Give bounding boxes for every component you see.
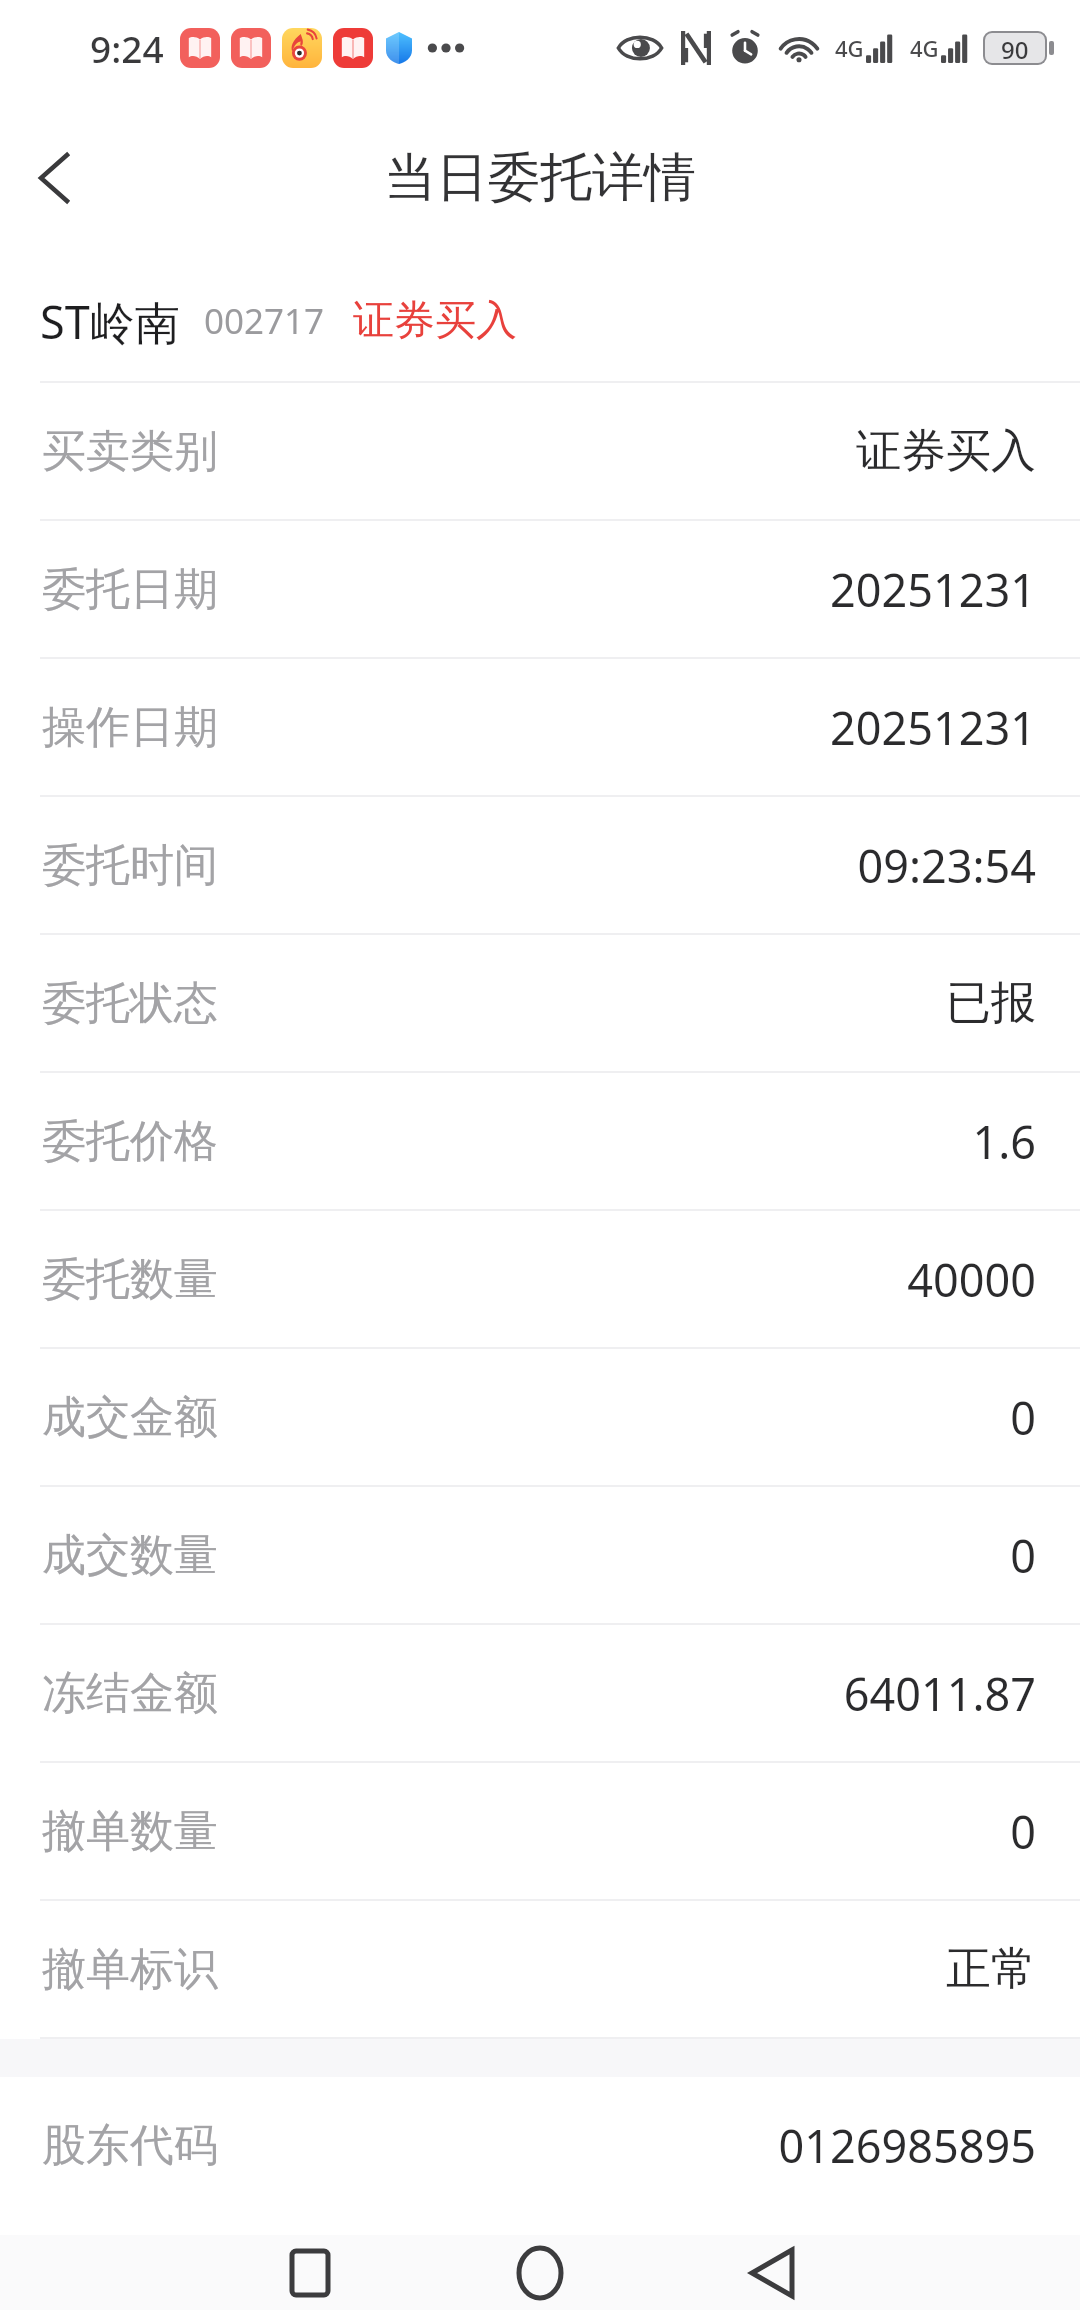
staticText: 股东代码 — [42, 2118, 218, 2173]
staticText: 买卖类别 — [42, 424, 218, 479]
staticText: 委托时间 — [42, 838, 218, 893]
button[interactable]: 委托状态 — [0, 935, 1080, 1071]
button[interactable]: 主页 — [492, 2235, 588, 2310]
staticText: 90 — [1001, 33, 1029, 63]
button[interactable]: 冻结金额 — [0, 1625, 1080, 1761]
staticText: 4G — [910, 33, 939, 63]
staticText: 撤单数量 — [42, 1804, 218, 1859]
staticText: 委托状态 — [42, 976, 218, 1031]
button[interactable]: 操作日期 — [0, 659, 1080, 795]
button[interactable]: 委托时间 — [0, 797, 1080, 933]
staticText: 正常 — [946, 1941, 1036, 1998]
staticText: 64011.87 — [843, 1663, 1036, 1724]
staticText: 0 — [1010, 1801, 1036, 1862]
staticText: 成交数量 — [42, 1528, 218, 1583]
staticText: 0 — [1010, 1525, 1036, 1586]
button[interactable]: 撤单数量 — [0, 1763, 1080, 1899]
staticText: 4G — [835, 33, 864, 63]
button[interactable]: 撤单标识 — [0, 1901, 1080, 2037]
staticText: 成交金额 — [42, 1390, 218, 1445]
staticText: 002717 — [204, 297, 325, 345]
staticText: 1.6 — [972, 1111, 1036, 1172]
staticText: 40000 — [907, 1249, 1036, 1310]
staticText: 操作日期 — [42, 700, 218, 755]
staticText: 20251231 — [830, 559, 1036, 620]
button[interactable]: 买卖类别 — [0, 383, 1080, 519]
staticText: 0 — [1010, 1387, 1036, 1448]
button[interactable]: 返回 — [724, 2235, 820, 2310]
button[interactable]: 返回 — [0, 124, 108, 232]
button[interactable]: 成交数量 — [0, 1487, 1080, 1623]
staticText: 证券买入 — [856, 423, 1036, 480]
button[interactable]: 委托价格 — [0, 1073, 1080, 1209]
button[interactable]: 股东代码 — [0, 2077, 1080, 2213]
staticText: 委托日期 — [42, 562, 218, 617]
button[interactable]: 委托日期 — [0, 521, 1080, 657]
button[interactable]: 成交金额 — [0, 1349, 1080, 1485]
staticText: 证券买入 — [353, 295, 517, 347]
staticText: 0126985895 — [778, 2115, 1036, 2176]
staticText: 当日委托详情 — [384, 145, 696, 211]
staticText: 委托价格 — [42, 1114, 218, 1169]
staticText: 已报 — [946, 975, 1036, 1032]
staticText: 20251231 — [830, 697, 1036, 758]
button[interactable]: 最近任务 — [262, 2235, 358, 2310]
staticText: 09:23:54 — [857, 835, 1036, 896]
staticText: 冻结金额 — [42, 1666, 218, 1721]
staticText: 委托数量 — [42, 1252, 218, 1307]
staticText: 9:24 — [90, 23, 164, 73]
staticText: ST岭南 — [40, 291, 180, 352]
button[interactable]: 委托数量 — [0, 1211, 1080, 1347]
staticText: 撤单标识 — [42, 1942, 218, 1997]
